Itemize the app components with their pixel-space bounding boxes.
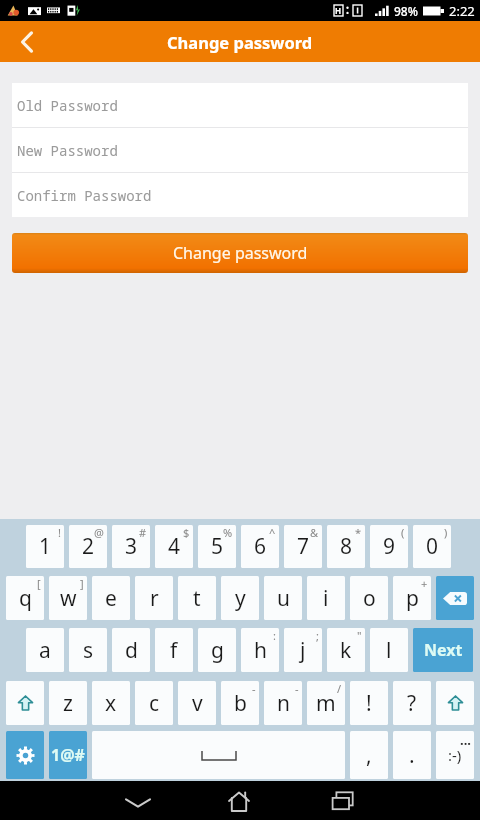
staticText: 5 (211, 532, 224, 561)
staticText: : (273, 628, 276, 643)
button[interactable]: i (307, 576, 345, 620)
button[interactable]: n (264, 681, 302, 725)
button[interactable]: g (198, 628, 236, 672)
button[interactable]: r (135, 576, 173, 620)
button[interactable]: Confirm Password (12, 173, 468, 217)
button[interactable]: Recent apps (320, 781, 394, 820)
staticText: Next (424, 639, 463, 661)
staticText: v (192, 689, 203, 718)
button[interactable]: Shift (6, 681, 44, 725)
staticText: b (234, 689, 247, 718)
button[interactable]: Old Password (12, 83, 468, 127)
button[interactable]: New Password (12, 128, 468, 172)
staticText: i (323, 584, 329, 613)
staticText: ; (316, 628, 319, 643)
staticText: l (386, 636, 392, 665)
staticText: g (211, 636, 224, 665)
staticText: ) (444, 525, 448, 540)
button[interactable]: z (49, 681, 87, 725)
staticText: - (252, 681, 256, 696)
button[interactable]: 1@# (49, 731, 87, 779)
button[interactable]: v (178, 681, 216, 725)
button[interactable]: 9 (370, 525, 408, 568)
staticText: @ (94, 525, 104, 540)
button[interactable]: s (69, 628, 107, 672)
button[interactable]: k (327, 628, 365, 672)
staticText: 4 (168, 532, 181, 561)
button[interactable]: 4 (155, 525, 193, 568)
button[interactable]: x (92, 681, 130, 725)
button[interactable]: h (241, 628, 279, 672)
button[interactable]: :-) (436, 731, 474, 779)
staticText: :-) (448, 745, 462, 765)
staticText: ( (401, 525, 405, 540)
button[interactable]: j (284, 628, 322, 672)
staticText: m (316, 689, 336, 718)
button[interactable]: q (6, 576, 44, 620)
button[interactable]: Space (92, 731, 345, 779)
button[interactable]: Settings (6, 731, 44, 779)
button[interactable]: 3 (112, 525, 150, 568)
button[interactable]: 5 (198, 525, 236, 568)
button[interactable]: Next (413, 628, 473, 672)
staticText: n (277, 689, 290, 718)
staticText: 7 (297, 532, 310, 561)
button[interactable]: m (307, 681, 345, 725)
button[interactable]: 1 (26, 525, 64, 568)
staticText: ? (407, 689, 417, 718)
staticText: q (19, 584, 32, 613)
button[interactable]: Back (101, 781, 175, 820)
button[interactable]: f (155, 628, 193, 672)
staticText: 2:22 (449, 2, 475, 20)
button[interactable]: , (350, 731, 388, 779)
staticText: 9 (383, 532, 396, 561)
button[interactable]: c (135, 681, 173, 725)
button[interactable]: 6 (241, 525, 279, 568)
staticText: 2 (82, 532, 95, 561)
button[interactable]: w (49, 576, 87, 620)
button[interactable]: a (26, 628, 64, 672)
staticText: Old Password (17, 96, 118, 115)
staticText: * (355, 525, 362, 540)
staticText: w (60, 584, 77, 613)
button[interactable]: y (221, 576, 259, 620)
button[interactable]: Back (0, 21, 54, 62)
button[interactable]: Shift (436, 681, 474, 725)
staticText: , (366, 741, 372, 770)
button[interactable]: 7 (284, 525, 322, 568)
staticText: a (39, 636, 51, 665)
button[interactable]: t (178, 576, 216, 620)
button[interactable]: 8 (327, 525, 365, 568)
button[interactable]: Home (202, 781, 276, 820)
staticText: # (139, 525, 147, 540)
staticText: x (105, 689, 117, 718)
staticText: p (406, 584, 419, 613)
staticText: ! (366, 689, 372, 718)
button[interactable]: p (393, 576, 431, 620)
staticText: o (363, 584, 376, 613)
button[interactable]: ! (350, 681, 388, 725)
staticText: Change password (173, 242, 308, 264)
button[interactable]: ? (393, 681, 431, 725)
staticText: d (125, 636, 138, 665)
staticText: % (223, 525, 233, 540)
button[interactable]: o (350, 576, 388, 620)
button[interactable]: e (92, 576, 130, 620)
staticText: u (277, 584, 290, 613)
button[interactable]: Change password (12, 233, 468, 273)
button[interactable]: l (370, 628, 408, 672)
button[interactable]: . (393, 731, 431, 779)
staticText: . (409, 741, 415, 770)
button[interactable]: d (112, 628, 150, 672)
button[interactable]: u (264, 576, 302, 620)
staticText: $ (183, 525, 190, 540)
staticText: - (295, 681, 299, 696)
button[interactable]: 2 (69, 525, 107, 568)
staticText: ... (460, 731, 471, 749)
button[interactable]: 0 (413, 525, 451, 568)
staticText: 6 (254, 532, 267, 561)
staticText: f (170, 636, 178, 665)
staticText: s (83, 636, 94, 665)
button[interactable]: Backspace (436, 576, 474, 620)
button[interactable]: b (221, 681, 259, 725)
